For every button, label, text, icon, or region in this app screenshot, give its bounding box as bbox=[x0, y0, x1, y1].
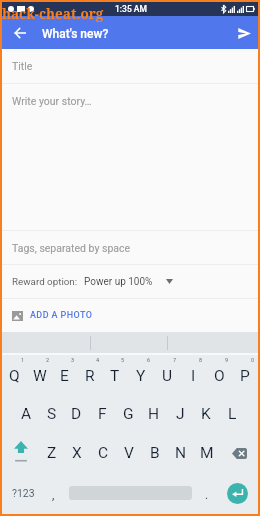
staticText: H bbox=[148, 405, 160, 423]
staticText: U bbox=[162, 367, 173, 385]
button[interactable]: S bbox=[39, 394, 64, 433]
staticText: J bbox=[176, 405, 185, 423]
staticText: L bbox=[228, 405, 237, 423]
button[interactable]: . bbox=[194, 472, 220, 514]
staticText: I bbox=[191, 367, 196, 385]
staticText: A bbox=[21, 405, 32, 423]
button[interactable]: R bbox=[77, 355, 102, 394]
button[interactable]: Back bbox=[9, 22, 31, 44]
button[interactable]: P bbox=[232, 355, 258, 394]
staticText: 4 bbox=[96, 357, 100, 363]
button[interactable]: X bbox=[64, 433, 90, 472]
staticText: What's new? bbox=[42, 27, 109, 41]
staticText: 8 bbox=[199, 357, 203, 363]
staticText: 6 bbox=[147, 357, 151, 363]
button[interactable]: G bbox=[115, 394, 141, 433]
staticText: M bbox=[200, 444, 214, 462]
button[interactable]: K bbox=[193, 394, 219, 433]
button[interactable]: H bbox=[141, 394, 167, 433]
button[interactable]: V bbox=[116, 433, 142, 472]
staticText: hack-cheat.org bbox=[2, 5, 104, 23]
staticText: N bbox=[175, 444, 187, 462]
staticText: , bbox=[52, 488, 55, 502]
button[interactable]: C bbox=[90, 433, 116, 472]
staticText: 3 bbox=[71, 357, 75, 363]
button[interactable]: W bbox=[27, 355, 52, 394]
button[interactable]: Send bbox=[233, 22, 255, 44]
staticText: B bbox=[150, 444, 160, 462]
staticText: Y bbox=[136, 367, 146, 385]
staticText: T bbox=[110, 367, 120, 385]
button[interactable]: Delete bbox=[220, 433, 258, 472]
staticText: 0 bbox=[251, 357, 255, 363]
button[interactable]: I bbox=[180, 355, 206, 394]
staticText: F bbox=[98, 405, 107, 423]
staticText: 9 bbox=[225, 357, 229, 363]
button[interactable]: Reward option: bbox=[2, 265, 258, 298]
staticText: 7 bbox=[173, 357, 177, 363]
button[interactable]: Write your story… bbox=[2, 84, 258, 230]
staticText: 1 bbox=[21, 357, 25, 363]
staticText: C bbox=[98, 444, 109, 462]
staticText: X bbox=[72, 444, 82, 462]
staticText: Tags, separated by space bbox=[12, 242, 131, 254]
button[interactable]: Q bbox=[2, 355, 27, 394]
button[interactable]: Enter bbox=[220, 472, 258, 514]
button[interactable]: N bbox=[168, 433, 194, 472]
button[interactable]: O bbox=[206, 355, 232, 394]
staticText: R bbox=[85, 367, 95, 385]
staticText: K bbox=[201, 405, 211, 423]
staticText: Q bbox=[9, 367, 20, 385]
button[interactable]: Title bbox=[2, 49, 258, 83]
staticText: Title bbox=[12, 60, 33, 72]
staticText: V bbox=[124, 444, 134, 462]
button[interactable]: L bbox=[219, 394, 245, 433]
button[interactable]: ADD A PHOTO bbox=[2, 299, 258, 332]
staticText: 5 bbox=[121, 357, 125, 363]
button[interactable]: ?123 bbox=[2, 472, 40, 514]
staticText: 1:35 AM bbox=[115, 4, 147, 14]
button[interactable]: Shift bbox=[2, 433, 39, 472]
button[interactable]: J bbox=[167, 394, 193, 433]
staticText: ADD A PHOTO bbox=[30, 310, 93, 321]
button[interactable]: Y bbox=[128, 355, 154, 394]
button[interactable]: A bbox=[14, 394, 39, 433]
staticText: Z bbox=[47, 444, 57, 462]
button[interactable]: Tags, separated by space bbox=[2, 231, 258, 264]
button[interactable]: T bbox=[102, 355, 128, 394]
staticText: D bbox=[71, 405, 82, 423]
staticText: Write your story… bbox=[12, 95, 92, 107]
staticText: G bbox=[123, 405, 134, 423]
button[interactable]: U bbox=[154, 355, 180, 394]
staticText: 2 bbox=[46, 357, 50, 363]
staticText: W bbox=[33, 367, 47, 385]
staticText: Power up 100% bbox=[84, 276, 153, 288]
button[interactable]: M bbox=[194, 433, 220, 472]
button[interactable] bbox=[66, 472, 194, 514]
staticText: Reward option: bbox=[12, 276, 78, 287]
staticText: E bbox=[60, 367, 69, 385]
button[interactable]: F bbox=[89, 394, 115, 433]
button[interactable]: , bbox=[40, 472, 66, 514]
staticText: . bbox=[205, 488, 209, 502]
staticText: P bbox=[240, 367, 250, 385]
button[interactable]: Z bbox=[39, 433, 64, 472]
button[interactable]: E bbox=[52, 355, 77, 394]
button[interactable]: B bbox=[142, 433, 168, 472]
staticText: ?123 bbox=[12, 487, 35, 499]
staticText: S bbox=[47, 405, 57, 423]
staticText: O bbox=[214, 367, 225, 385]
button[interactable]: D bbox=[64, 394, 89, 433]
